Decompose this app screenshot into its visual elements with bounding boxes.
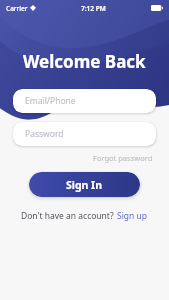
staticText: Password <box>25 128 64 140</box>
button[interactable]: Sign In <box>29 172 140 197</box>
staticText: Don't have an account? <box>21 210 116 222</box>
staticText: Carrier <box>6 4 28 13</box>
staticText: Welcome Back <box>23 50 146 73</box>
staticText: 7:12 PM <box>81 4 106 13</box>
staticText: Sign In <box>66 178 103 192</box>
staticText: Email/Phone <box>25 95 76 107</box>
staticText: Sign up <box>117 210 148 222</box>
button[interactable]: Password <box>13 122 156 146</box>
button[interactable]: Forgot password <box>91 151 155 165</box>
staticText: Forgot password <box>93 153 153 163</box>
button[interactable]: Sign up <box>116 208 149 224</box>
button[interactable]: Email/Phone <box>13 89 156 113</box>
